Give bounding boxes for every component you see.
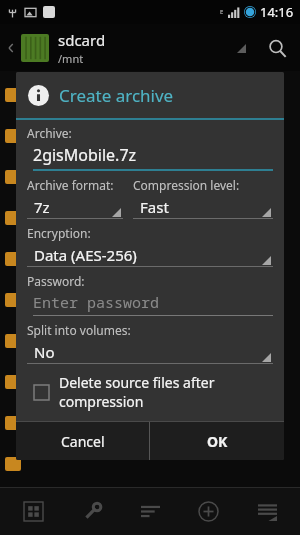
staticText: No xyxy=(34,342,55,362)
staticText: Data (AES-256) xyxy=(34,245,137,265)
staticText: 2gisMobile.7z xyxy=(33,144,137,166)
button[interactable]: Menu xyxy=(242,488,292,534)
button[interactable]: Up xyxy=(4,31,18,65)
staticText: Delete source files after xyxy=(59,373,215,392)
staticText: Archive format: xyxy=(27,177,114,193)
button[interactable]: Grid view xyxy=(8,488,58,534)
staticText: sdcard xyxy=(58,30,106,50)
button[interactable]: Tools xyxy=(67,488,117,534)
staticText: compression xyxy=(59,392,144,411)
button[interactable]: Search xyxy=(262,33,292,63)
staticText: E xyxy=(220,8,224,16)
staticText: Create archive xyxy=(59,84,174,107)
button[interactable]: No xyxy=(27,340,273,364)
button[interactable]: Data (AES-256) xyxy=(27,243,273,267)
staticText: /mnt xyxy=(58,51,84,66)
button[interactable]: Sort xyxy=(125,488,175,534)
button[interactable]: Add xyxy=(183,488,233,534)
staticText: Split into volumes: xyxy=(27,322,131,338)
staticText: Archive: xyxy=(27,125,72,141)
staticText: OK xyxy=(207,432,228,451)
button[interactable]: Cancel xyxy=(16,422,149,460)
button[interactable]: OK xyxy=(150,422,284,460)
button[interactable]: Delete source files after xyxy=(27,371,273,413)
staticText: Fast xyxy=(140,197,169,217)
staticText: Encryption: xyxy=(27,225,91,241)
button[interactable]: 7z xyxy=(27,195,123,219)
button[interactable]: Sort xyxy=(232,39,250,57)
staticText: Cancel xyxy=(61,432,105,451)
staticText: Enter password xyxy=(33,292,160,312)
staticText: Compression level: xyxy=(133,177,240,193)
button[interactable]: Fast xyxy=(133,195,273,219)
staticText: 7z xyxy=(34,197,50,217)
staticText: Password: xyxy=(27,273,85,289)
staticText: 14:16 xyxy=(260,3,294,21)
